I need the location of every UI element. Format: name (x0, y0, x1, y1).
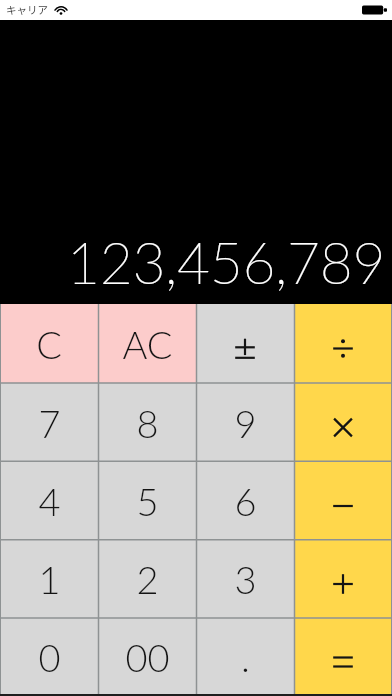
button[interactable]: 00 (98, 618, 196, 696)
button[interactable]: Divide (294, 304, 392, 383)
staticText: 00 (125, 634, 170, 680)
button[interactable]: 6 (196, 462, 294, 540)
button[interactable]: Add (294, 540, 392, 618)
staticText: . (241, 634, 250, 680)
button[interactable]: 7 (0, 383, 98, 462)
button[interactable]: Multiply (294, 383, 392, 462)
button[interactable]: Plus minus (196, 304, 294, 383)
staticText: 6 (234, 478, 257, 524)
staticText: キャリア (6, 2, 48, 17)
staticText: 7 (38, 400, 61, 446)
staticText: 8 (136, 400, 159, 446)
button[interactable]: . (196, 618, 294, 696)
button[interactable]: 0 (0, 618, 98, 696)
staticText: 4 (38, 478, 61, 524)
staticText: 2 (136, 556, 159, 602)
staticText: 123,456,789 (67, 228, 386, 296)
button[interactable]: AC (98, 304, 196, 383)
button[interactable]: 2 (98, 540, 196, 618)
staticText: AC (122, 321, 173, 367)
staticText: C (36, 321, 62, 367)
button[interactable]: 8 (98, 383, 196, 462)
staticText: 5 (136, 478, 159, 524)
button[interactable]: 3 (196, 540, 294, 618)
button[interactable]: Subtract (294, 462, 392, 540)
staticText: 3 (234, 556, 257, 602)
button[interactable]: Equals (294, 618, 392, 696)
staticText: 1 (38, 556, 61, 602)
button[interactable]: 5 (98, 462, 196, 540)
staticText: 0 (38, 634, 61, 680)
button[interactable]: 1 (0, 540, 98, 618)
button[interactable]: 4 (0, 462, 98, 540)
staticText: 9 (234, 400, 257, 446)
button[interactable]: 9 (196, 383, 294, 462)
button[interactable]: C (0, 304, 98, 383)
